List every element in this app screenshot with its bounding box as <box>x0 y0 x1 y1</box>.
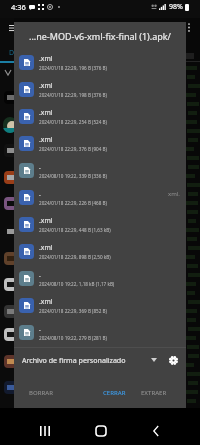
staticText: .xml <box>39 54 53 63</box>
staticText: 2024/08/10 19:22, 339 B (336 B) <box>39 173 107 179</box>
staticText: . <box>39 189 41 198</box>
staticText: 2024/08/10 19:22, 279 B (281 B) <box>39 335 107 341</box>
button[interactable]: BORRAR <box>24 379 58 407</box>
button[interactable]: Settings <box>161 346 186 374</box>
staticText: BORRAR <box>29 389 53 397</box>
button[interactable]: .xml <box>14 238 186 265</box>
button[interactable]: . <box>14 319 186 346</box>
button[interactable]: . <box>14 184 186 211</box>
staticText: 2024/01/18 22:29, 198 B (376 B) <box>39 92 107 98</box>
button[interactable]: .xml <box>14 49 186 76</box>
staticText: . <box>39 324 41 333</box>
button[interactable]: Archivo de firma personalizado <box>14 346 161 374</box>
button[interactable]: .xml <box>14 292 186 319</box>
staticText: 2024/01/18 22:29, 369 B (852 B) <box>39 308 107 314</box>
staticText: Archivo de firma personalizado <box>22 355 126 365</box>
staticText: .xml <box>39 216 53 225</box>
button[interactable]: .xml <box>14 103 186 130</box>
button[interactable]: .xml <box>14 130 186 157</box>
staticText: .xml <box>39 108 53 117</box>
staticText: EXTRAER <box>141 389 167 397</box>
staticText: 2024/01/18 22:29, 226 B (468 B) <box>39 200 107 206</box>
button[interactable]: .xml <box>14 211 186 238</box>
button[interactable]: . <box>14 265 186 292</box>
button[interactable]: .xml <box>14 76 186 103</box>
staticText: xml. <box>168 190 180 198</box>
button[interactable]: Back <box>128 421 183 441</box>
button[interactable]: . <box>14 157 186 184</box>
staticText: 2024/01/18 22:29, 376 B (904 B) <box>39 146 107 152</box>
staticText: .xml <box>39 243 53 252</box>
staticText: . <box>39 270 41 279</box>
staticText: 2024/01/18 22:29, 898 B (2,50 kB) <box>39 254 111 260</box>
staticText: .xml <box>39 135 53 144</box>
staticText: 2024/01/18 22:29, 448 B (1,63 kB) <box>39 227 111 233</box>
button[interactable]: Home <box>73 421 128 441</box>
staticText: ...ne-MOD-v6-xml-fix-final (1).apk/ <box>29 30 171 42</box>
staticText: CERRAR <box>103 389 126 397</box>
button[interactable]: EXTRAER <box>136 379 186 407</box>
staticText: 4:36 <box>11 2 26 12</box>
staticText: 98% <box>169 2 183 12</box>
staticText: .xml <box>39 297 53 306</box>
staticText: .xml <box>39 81 53 90</box>
staticText: D <box>9 48 15 58</box>
button[interactable]: CERRAR <box>98 379 136 407</box>
staticText: 2024/01/18 22:29, 254 B (524 B) <box>39 119 107 125</box>
staticText: . <box>39 162 41 171</box>
staticText: 2024/08/10 19:22, 1,18 kB (1,17 kB) <box>39 281 115 287</box>
staticText: 2024/01/18 22:29, 196 B (376 B) <box>39 65 107 71</box>
button[interactable]: Recent apps <box>17 421 73 441</box>
